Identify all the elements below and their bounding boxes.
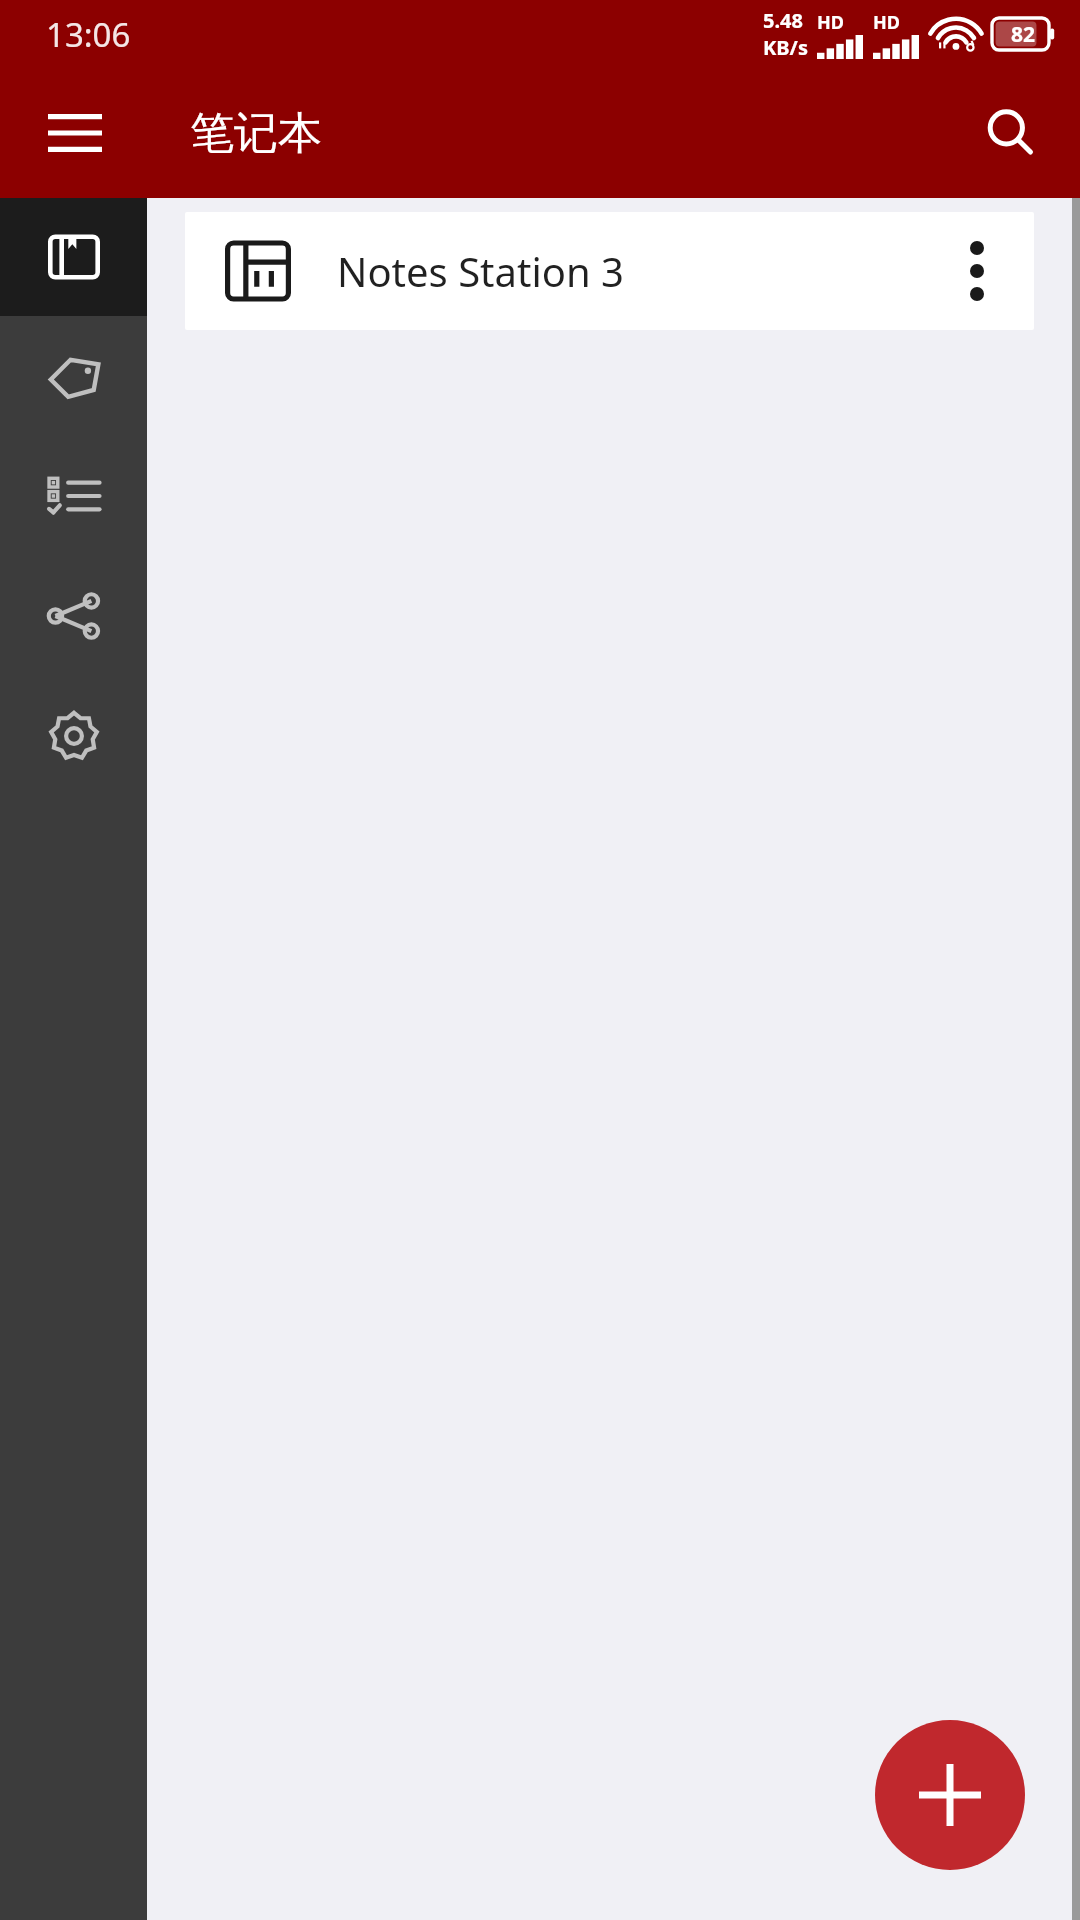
button[interactable]: Add note: [875, 1720, 1025, 1870]
button[interactable]: Shared: [0, 556, 147, 676]
staticText: 82: [1011, 20, 1036, 49]
staticText: HD: [817, 10, 844, 35]
button[interactable]: More options: [934, 228, 1020, 314]
button[interactable]: Open navigation menu: [26, 84, 124, 182]
button[interactable]: To-do lists: [0, 436, 147, 556]
button[interactable]: Notes Station 3: [185, 212, 1034, 330]
staticText: Notes Station 3: [337, 244, 934, 298]
staticText: KB/s: [763, 34, 808, 61]
staticText: 13:06: [46, 12, 131, 57]
button[interactable]: Settings: [0, 676, 147, 796]
staticText: HD: [873, 10, 900, 35]
button[interactable]: Notebooks: [0, 198, 147, 316]
button[interactable]: Search: [962, 84, 1060, 182]
staticText: 5.48: [763, 7, 803, 34]
button[interactable]: Tags: [0, 316, 147, 436]
staticText: 笔记本: [190, 106, 322, 161]
